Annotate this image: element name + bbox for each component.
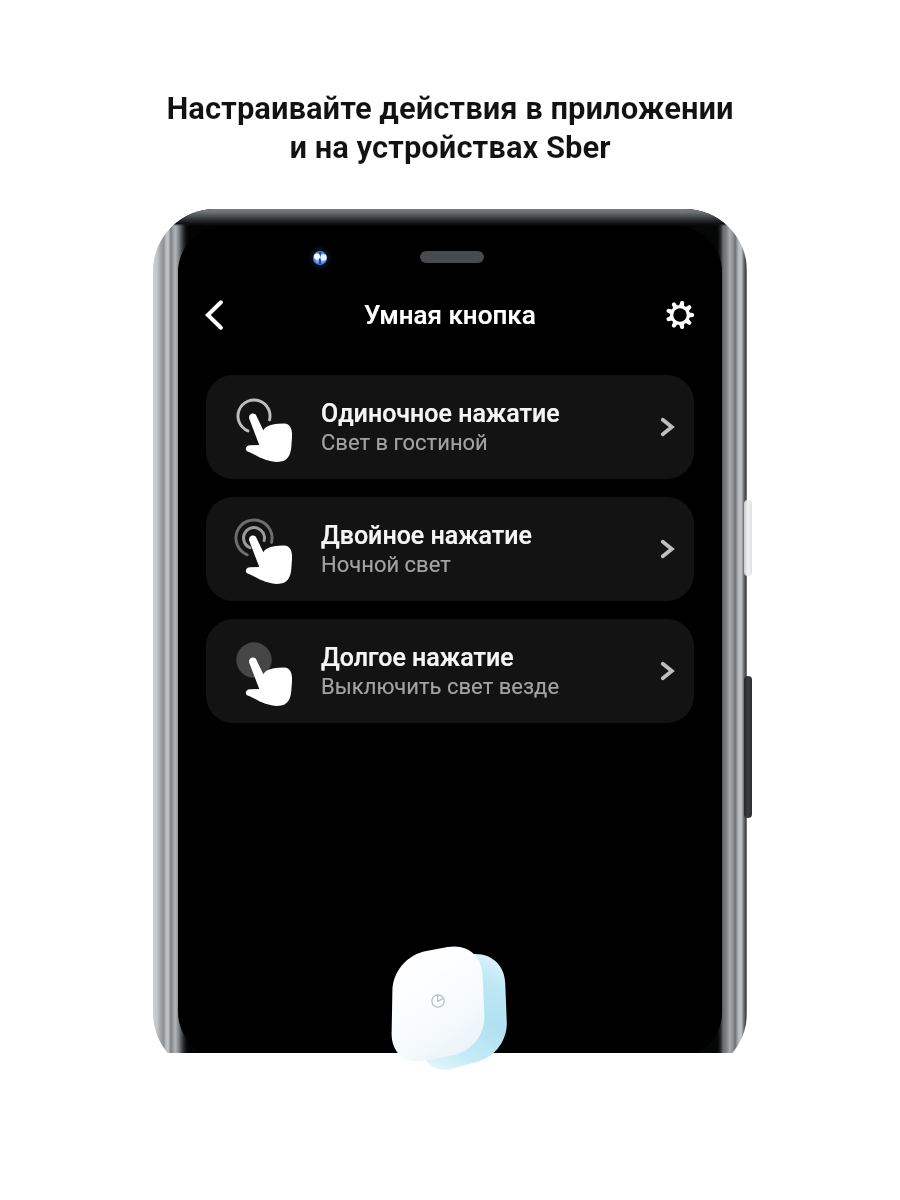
button[interactable]: Одиночное нажатие [206, 375, 694, 479]
staticText: Двойное нажатие [321, 521, 532, 550]
staticText: Выключить свет везде [321, 674, 560, 700]
button[interactable]: Долгое нажатие [206, 619, 694, 723]
staticText: Одиночное нажатие [321, 399, 560, 428]
button[interactable]: Назад [190, 289, 242, 341]
staticText: Умная кнопка [364, 300, 536, 330]
staticText: Ночной свет [321, 552, 451, 578]
staticText: Настраивайте действия в приложении и на … [0, 90, 900, 165]
button[interactable]: Настройки [656, 291, 704, 339]
staticText: Свет в гостиной [321, 430, 488, 456]
button[interactable]: Двойное нажатие [206, 497, 694, 601]
staticText: Долгое нажатие [321, 643, 514, 672]
